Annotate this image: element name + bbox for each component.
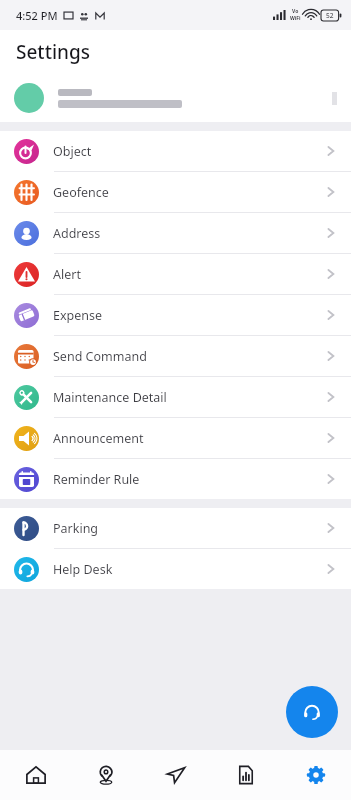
staticText: Geofence [53, 184, 109, 201]
staticText: Help Desk [53, 561, 113, 578]
staticText: Settings [16, 39, 90, 65]
staticText: Send Command [53, 348, 147, 365]
button[interactable]: Reminder Rule [0, 459, 351, 499]
button[interactable] [0, 74, 351, 122]
button[interactable]: Reports [211, 750, 281, 800]
button[interactable]: Address [0, 213, 351, 253]
staticText: Alert [53, 266, 81, 283]
button[interactable]: Alert [0, 254, 351, 294]
staticText: Object [53, 143, 92, 160]
staticText: Address [53, 225, 101, 242]
button[interactable]: Parking [0, 508, 351, 548]
button[interactable]: Settings [281, 750, 351, 800]
staticText: 52 [326, 11, 334, 20]
staticText: Expense [53, 307, 103, 324]
button[interactable]: Geofence [0, 172, 351, 212]
button[interactable]: Send Command [0, 336, 351, 376]
button[interactable]: Object [0, 131, 351, 171]
staticText: Reminder Rule [53, 471, 140, 488]
button[interactable]: Help Desk [0, 549, 351, 589]
staticText: Vo [292, 8, 299, 15]
staticText: Announcement [53, 430, 144, 447]
button[interactable]: Maintenance Detail [0, 377, 351, 417]
staticText: Maintenance Detail [53, 389, 167, 406]
button[interactable]: Home [0, 750, 71, 800]
button[interactable]: Places [71, 750, 141, 800]
button[interactable]: Announcement [0, 418, 351, 458]
button[interactable]: Navigate [141, 750, 211, 800]
staticText: 4:52 PM [16, 8, 58, 23]
staticText: Parking [53, 520, 99, 537]
staticText: WiFi [290, 15, 301, 22]
button[interactable]: Support [286, 686, 338, 738]
button[interactable]: Expense [0, 295, 351, 335]
